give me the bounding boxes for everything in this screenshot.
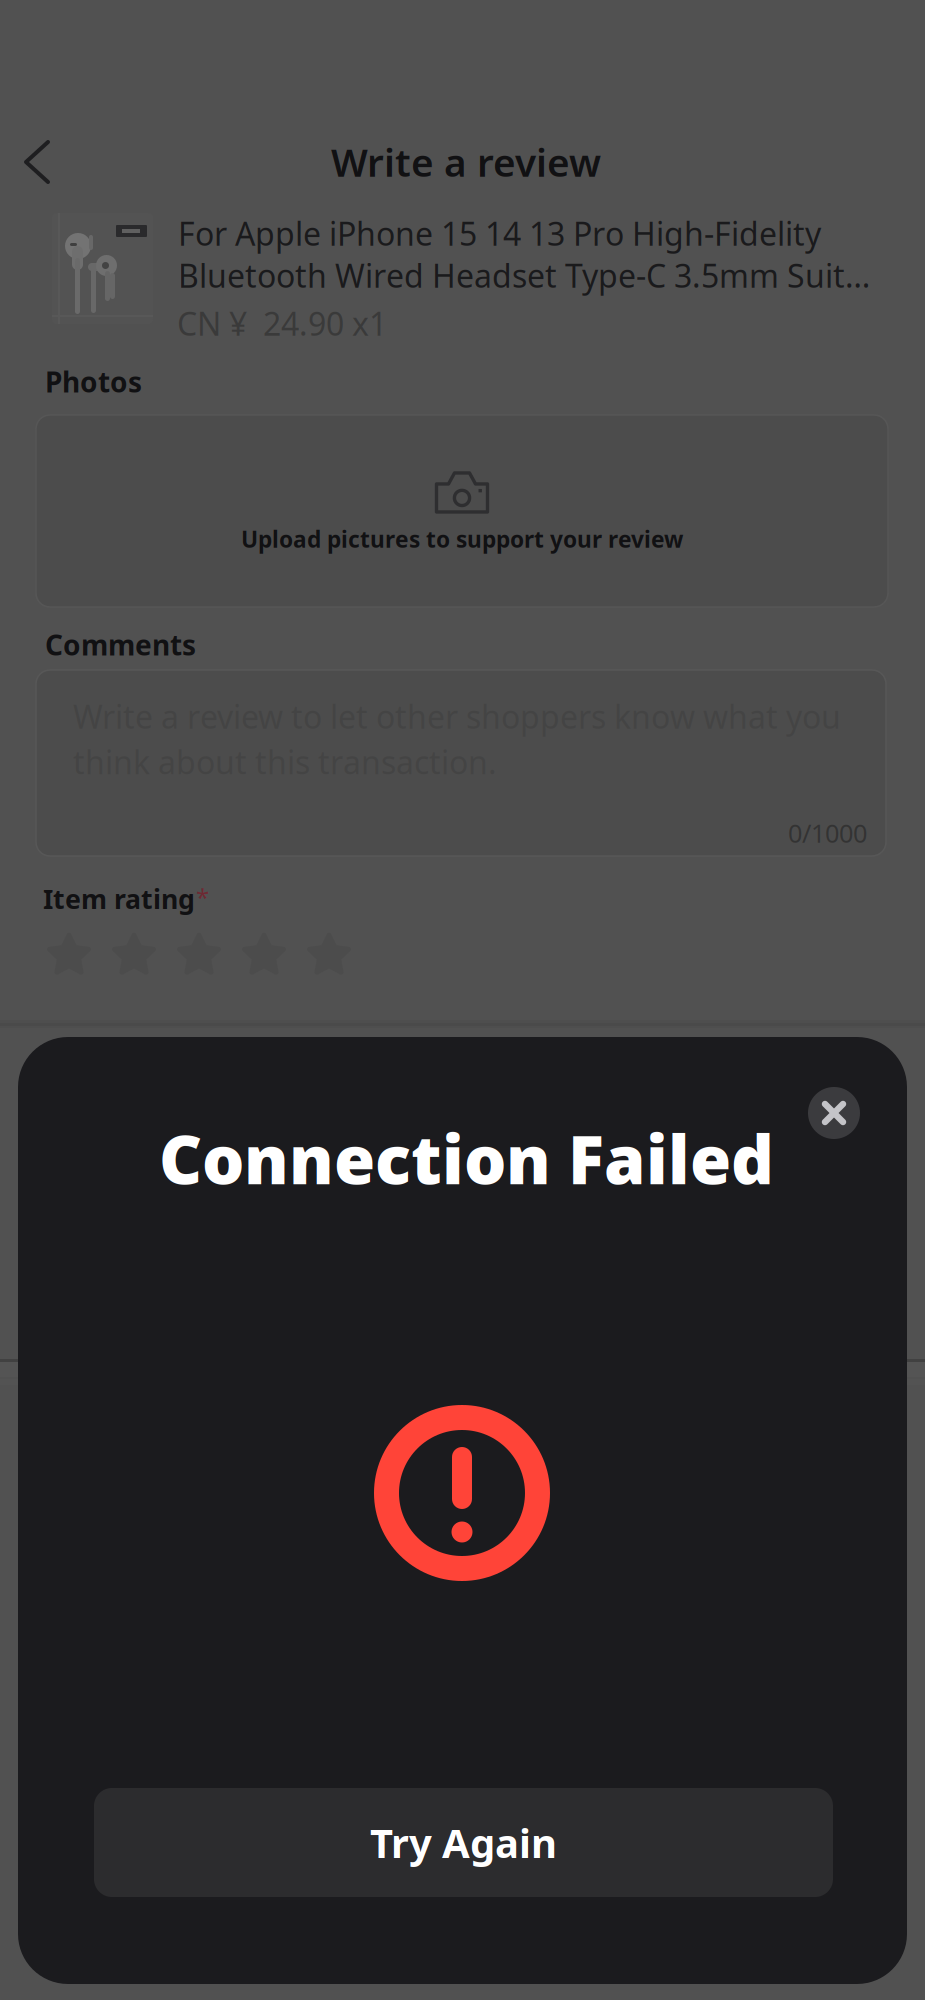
button[interactable]: Try Again (94, 1788, 833, 1897)
button[interactable]: Close (808, 1087, 860, 1139)
staticText: Try Again (370, 1816, 557, 1869)
staticText: CN ¥ 24.90 x1 (177, 302, 387, 344)
staticText: Bluetooth Wired Headset Type-C 3.5mm Sui… (178, 254, 870, 296)
staticText: Photos (45, 363, 142, 400)
staticText: 0/1000 (788, 816, 867, 850)
staticText: Item rating (43, 881, 195, 916)
button[interactable]: Back (5, 121, 69, 203)
button[interactable]: Upload pictures to support your review (36, 415, 888, 607)
staticText: For Apple iPhone 15 14 13 Pro High-Fidel… (178, 212, 821, 254)
staticText: Upload pictures to support your review (241, 524, 683, 554)
staticText: Comments (45, 626, 196, 663)
staticText: Connection Failed (159, 1114, 774, 1202)
staticText: Write a review (331, 136, 601, 187)
staticText: * (196, 881, 209, 913)
